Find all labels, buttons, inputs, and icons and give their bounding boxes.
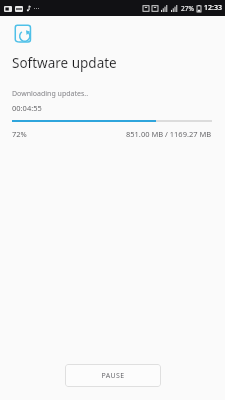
staticText: 27% xyxy=(181,4,194,13)
staticText: PAUSE xyxy=(101,371,125,381)
staticText: Software update xyxy=(12,54,117,72)
staticText: 72% xyxy=(12,129,27,139)
staticText: 851.00 MB / 1169.27 MB xyxy=(126,129,212,139)
button[interactable]: PAUSE xyxy=(65,364,161,387)
staticText: 12:33 xyxy=(204,3,222,13)
staticText: 00:04:55 xyxy=(12,103,42,113)
staticText: Downloading updates.. xyxy=(12,89,89,99)
